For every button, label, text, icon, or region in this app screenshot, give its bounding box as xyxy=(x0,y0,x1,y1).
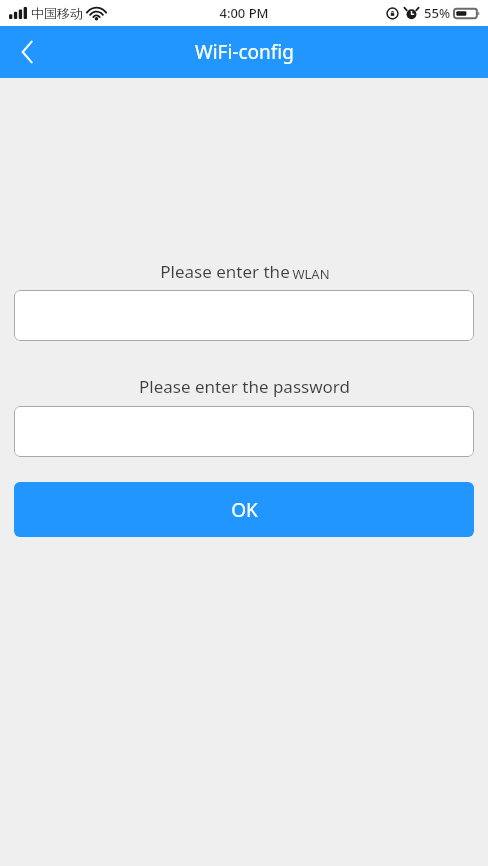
staticText: 4:00 PM xyxy=(219,4,269,22)
staticText: 55% xyxy=(424,4,450,22)
staticText: Please enter the password xyxy=(139,375,350,398)
button[interactable] xyxy=(14,290,474,341)
staticText: 中国移动 xyxy=(31,5,83,21)
button[interactable]: OK xyxy=(14,482,474,537)
staticText: OK xyxy=(231,497,258,523)
button[interactable]: Back xyxy=(0,26,54,78)
button[interactable] xyxy=(14,406,474,457)
staticText: Please enter the xyxy=(158,260,292,283)
staticText: WiFi-config xyxy=(195,39,294,65)
staticText: WLAN xyxy=(292,265,330,283)
